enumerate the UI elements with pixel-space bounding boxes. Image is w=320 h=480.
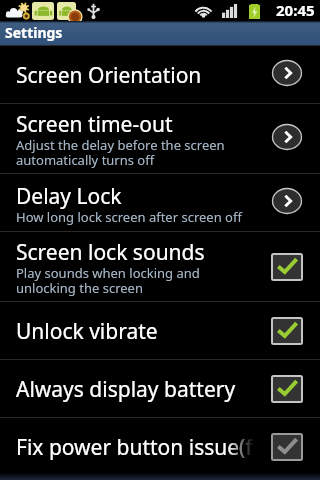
staticText: How long lock screen after screen off bbox=[16, 208, 242, 226]
button[interactable]: Toggle bbox=[264, 247, 310, 287]
staticText: Unlock vibrate bbox=[16, 317, 158, 346]
staticText: Adjust the delay before the screen autom… bbox=[16, 136, 225, 169]
button[interactable]: Open bbox=[264, 183, 310, 223]
staticText: Screen time-out bbox=[16, 110, 173, 139]
staticText: Fix power button issue(fo bbox=[16, 433, 254, 462]
button[interactable]: Always display battery bbox=[0, 360, 320, 417]
button[interactable]: Open bbox=[264, 119, 310, 159]
staticText: Screen Orientation bbox=[16, 61, 202, 90]
button[interactable]: Fix power button issue(fo bbox=[0, 418, 320, 475]
button[interactable]: Toggle bbox=[264, 427, 310, 467]
staticText: Play sounds when locking and unlocking t… bbox=[16, 264, 200, 297]
button[interactable]: Screen lock sounds bbox=[0, 232, 320, 301]
button[interactable]: Screen Orientation bbox=[0, 46, 320, 103]
staticText: Screen lock sounds bbox=[16, 238, 205, 267]
button[interactable]: Toggle bbox=[264, 311, 310, 351]
button[interactable]: Toggle bbox=[264, 369, 310, 409]
staticText: Settings bbox=[5, 23, 63, 42]
button[interactable]: Open bbox=[264, 55, 310, 95]
staticText: Delay Lock bbox=[16, 182, 122, 211]
button[interactable]: Unlock vibrate bbox=[0, 302, 320, 359]
button[interactable]: Screen time-out bbox=[0, 104, 320, 173]
staticText: Always display battery bbox=[16, 375, 236, 404]
staticText: 20:45 bbox=[276, 0, 315, 20]
button[interactable]: Delay Lock bbox=[0, 174, 320, 231]
